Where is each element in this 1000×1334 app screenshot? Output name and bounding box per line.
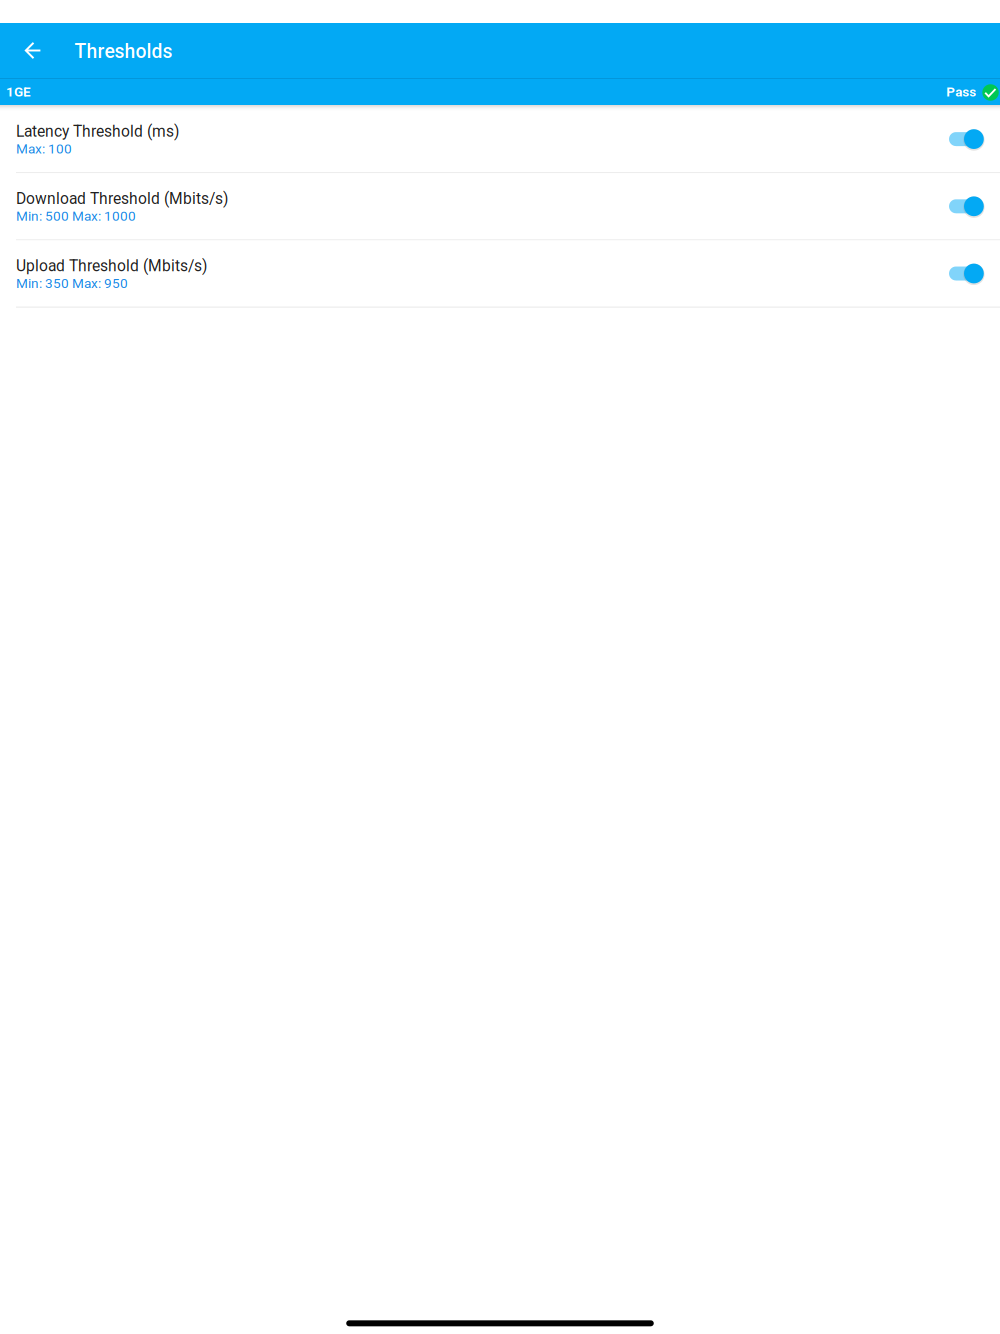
staticText: Thresholds: [74, 40, 172, 63]
staticText: Latency Threshold (ms): [16, 122, 179, 141]
button[interactable]: Upload Threshold (Mbits/s) enabled: [937, 240, 1000, 307]
button[interactable]: Download Threshold (Mbits/s): [0, 173, 937, 239]
staticText: Pass: [946, 84, 976, 100]
staticText: Min: 500 Max: 1000: [16, 208, 136, 224]
staticText: 1GE: [6, 84, 31, 100]
button[interactable]: Latency Threshold (ms): [0, 106, 937, 172]
button[interactable]: Back: [0, 23, 74, 78]
staticText: Min: 350 Max: 950: [16, 275, 128, 291]
staticText: Max: 100: [16, 141, 72, 157]
staticText: Upload Threshold (Mbits/s): [16, 257, 207, 275]
button[interactable]: Latency Threshold (ms) enabled: [937, 106, 1000, 172]
button[interactable]: Download Threshold (Mbits/s) enabled: [937, 173, 1000, 239]
button[interactable]: Upload Threshold (Mbits/s): [0, 240, 937, 307]
staticText: Download Threshold (Mbits/s): [16, 189, 228, 208]
